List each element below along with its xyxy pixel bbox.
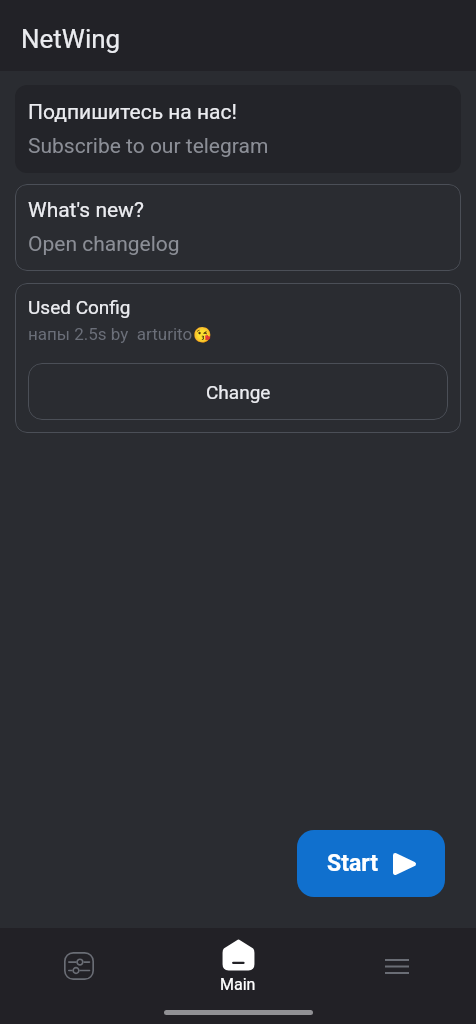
button[interactable]: Подпишитесь на нас!: [15, 85, 461, 173]
button[interactable]: Menu: [317, 928, 476, 1024]
staticText: What's new?: [28, 198, 144, 223]
staticText: Подпишитесь на нас!: [28, 100, 237, 125]
staticText: Open changelog: [28, 232, 180, 257]
staticText: Subscribe to our telegram: [28, 134, 269, 159]
staticText: NetWing: [21, 24, 121, 54]
staticText: Main: [220, 975, 256, 994]
button[interactable]: What's new?: [15, 184, 461, 271]
button[interactable]: Settings: [0, 928, 158, 1024]
button[interactable]: Change: [28, 363, 448, 420]
button[interactable]: Main: [158, 928, 317, 1024]
staticText: напы 2.5s by arturito: [28, 324, 193, 344]
button[interactable]: Start: [297, 830, 445, 897]
staticText: Change: [206, 381, 271, 403]
staticText: Used Config: [28, 296, 131, 318]
staticText: Start: [327, 850, 379, 877]
staticText: 😘: [193, 326, 212, 344]
